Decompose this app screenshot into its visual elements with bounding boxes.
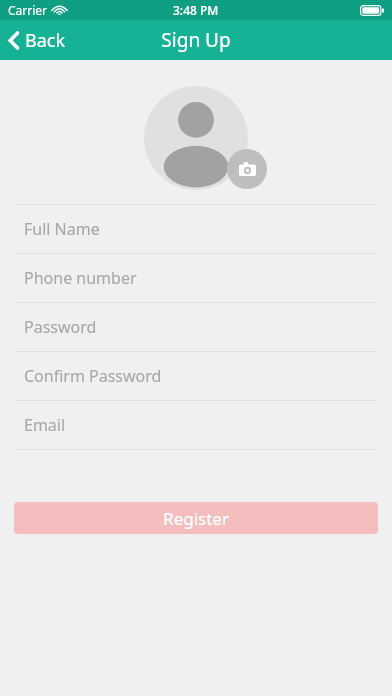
button[interactable]: Phone number [0, 254, 392, 302]
button[interactable]: Change profile photo [144, 86, 248, 190]
staticText: Email [24, 414, 66, 436]
button[interactable]: Email [0, 401, 392, 449]
staticText: Back [25, 28, 66, 53]
button[interactable]: Password [0, 303, 392, 351]
button[interactable]: Back [0, 23, 78, 58]
staticText: Full Name [24, 218, 100, 240]
button[interactable]: Confirm Password [0, 352, 392, 400]
staticText: Phone number [24, 267, 137, 289]
staticText: Confirm Password [24, 365, 162, 387]
staticText: Password [24, 316, 97, 338]
staticText: 3:48 PM [173, 2, 219, 18]
staticText: Register [163, 507, 229, 530]
staticText: Sign Up [161, 27, 231, 53]
staticText: Carrier [8, 2, 48, 18]
button[interactable]: Register [14, 502, 378, 534]
button[interactable]: Full Name [0, 205, 392, 253]
button[interactable]: Change profile photo [227, 149, 267, 189]
